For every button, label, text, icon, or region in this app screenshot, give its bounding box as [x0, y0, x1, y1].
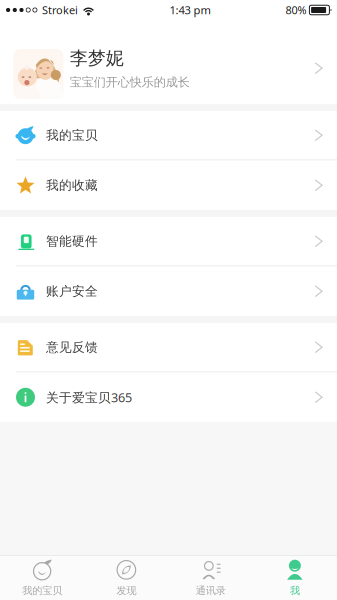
staticText: 我的宝贝 — [46, 127, 98, 143]
staticText: 宝宝们开心快乐的成长 — [70, 75, 190, 90]
staticText: 1:43 pm — [169, 2, 210, 18]
button[interactable]: 李梦妮 — [0, 20, 337, 104]
button[interactable]: 账户安全 — [0, 266, 337, 316]
button[interactable]: 我的收藏 — [0, 160, 337, 210]
staticText: 我的收藏 — [46, 177, 98, 193]
staticText: 李梦妮 — [70, 47, 124, 70]
button[interactable]: 发现 — [84, 556, 168, 600]
button[interactable]: 通讯录 — [168, 556, 253, 600]
staticText: 我 — [290, 584, 300, 597]
staticText: 我的宝贝 — [22, 584, 62, 597]
staticText: 意见反馈 — [46, 339, 98, 355]
staticText: 80% — [285, 3, 306, 17]
button[interactable]: 我 — [253, 556, 337, 600]
button[interactable]: 我的宝贝 — [0, 111, 337, 160]
button[interactable]: 智能硬件 — [0, 217, 337, 266]
button[interactable]: 我的宝贝 — [0, 556, 84, 600]
staticText: 关于爱宝贝365 — [46, 389, 132, 406]
staticText: 账户安全 — [46, 283, 98, 299]
staticText: 通讯录 — [196, 584, 226, 597]
staticText: 发现 — [116, 584, 136, 597]
staticText: Strokei — [42, 3, 78, 17]
button[interactable]: 关于爱宝贝365 — [0, 372, 337, 422]
staticText: 智能硬件 — [46, 233, 98, 249]
button[interactable]: 意见反馈 — [0, 323, 337, 372]
